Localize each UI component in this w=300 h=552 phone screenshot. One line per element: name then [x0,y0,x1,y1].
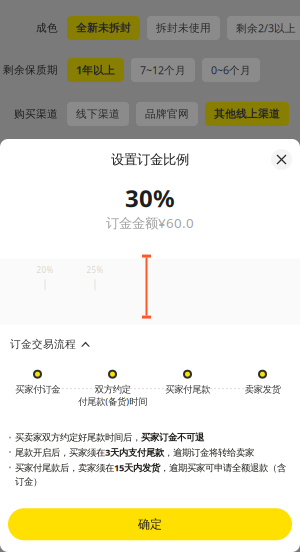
staticText: 订金金额¥60.0 [106,214,194,232]
staticText: 双方约定 付尾款(备货)时间 [78,384,147,408]
button[interactable]: 关闭 [271,149,292,170]
staticText: 剩余保质期 [3,63,58,76]
button[interactable]: 剩余2/3以上 [227,16,300,40]
staticText: 买卖家双方约定好尾款时间后，买家订金不可退 [15,431,204,443]
staticText: 线下渠道 [76,107,120,120]
staticText: 卖家发货 [244,384,280,395]
staticText: 30% [125,182,175,214]
staticText: 其他线上渠道 [214,107,280,120]
staticText: 20% [36,265,53,275]
staticText: 尾款开启后，买家须在3天内支付尾款，逾期订金将转给卖家 [15,446,254,458]
button[interactable]: 1年以上 [67,58,124,82]
staticText: 买家付尾款后，卖家须在15天内发货，逾期买家可申请全额退款（含订金） [15,461,286,487]
staticText: 25% [86,265,103,275]
staticText: 品牌官网 [145,107,189,120]
button[interactable]: 0~6个月 [202,58,260,82]
staticText: 设置订金比例 [111,151,189,168]
staticText: 全新未拆封 [76,21,131,34]
button[interactable]: 确定 [8,508,292,540]
staticText: 订金交易流程 [10,338,76,351]
staticText: 剩余2/3以上 [236,21,296,35]
staticText: 1年以上 [76,63,115,77]
staticText: 买家付尾款 [165,384,210,395]
staticText: 确定 [138,517,162,532]
button[interactable]: 7~12个月 [131,58,195,82]
staticText: 购买渠道 [14,107,58,120]
staticText: 7~12个月 [140,63,186,77]
button[interactable]: 拆封未使用 [147,16,220,40]
staticText: 成色 [36,21,58,34]
button[interactable]: 品牌官网 [136,102,198,126]
button[interactable]: 线下渠道 [67,102,129,126]
button[interactable]: 订金交易流程 [0,338,300,351]
button[interactable]: 其他线上渠道 [205,102,289,126]
staticText: 0~6个月 [211,63,251,77]
button[interactable]: 全新未拆封 [67,16,140,40]
staticText: 拆封未使用 [156,21,211,34]
staticText: 买家付订金 [15,384,60,395]
